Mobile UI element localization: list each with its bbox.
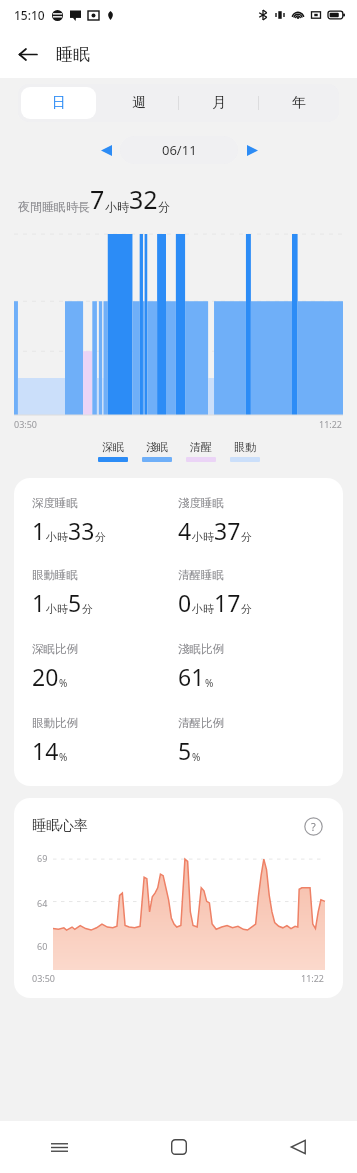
button[interactable]: Help: [301, 814, 325, 838]
staticText: 1: [32, 515, 46, 546]
staticText: 分: [241, 530, 252, 544]
staticText: 60: [37, 940, 48, 952]
button[interactable]: 月: [182, 87, 256, 119]
staticText: 11:22: [319, 418, 343, 430]
staticText: %: [205, 676, 214, 690]
staticText: 淺眠: [146, 440, 168, 454]
button[interactable]: 日: [21, 87, 96, 119]
button[interactable]: 年: [262, 87, 336, 119]
staticText: 分: [158, 199, 170, 214]
staticText: 深眠比例: [32, 642, 78, 656]
staticText: 淺眠比例: [178, 642, 224, 656]
staticText: 深度睡眠: [32, 496, 78, 510]
staticText: 夜間睡眠時長: [18, 199, 90, 214]
staticText: 分: [95, 530, 106, 544]
staticText: 15:10: [14, 7, 45, 23]
staticText: 小時: [192, 602, 214, 616]
staticText: 眼動比例: [32, 716, 78, 730]
staticText: 37: [214, 515, 241, 546]
staticText: 週: [132, 94, 146, 112]
staticText: %: [59, 676, 68, 690]
staticText: 清醒: [190, 440, 212, 454]
button[interactable]: 深眠: [98, 440, 128, 462]
staticText: 日: [52, 94, 66, 112]
staticText: 14: [32, 735, 59, 766]
staticText: 年: [292, 94, 306, 112]
staticText: 33: [68, 515, 95, 546]
staticText: 眼動: [234, 440, 256, 454]
staticText: 7: [90, 182, 105, 216]
button[interactable]: Next day: [238, 136, 266, 164]
button[interactable]: Recents: [0, 1121, 119, 1173]
staticText: 06/11: [162, 141, 197, 159]
staticText: 11:22: [301, 972, 325, 984]
button[interactable]: Back: [238, 1121, 357, 1173]
staticText: 小時: [46, 602, 68, 616]
staticText: 03:50: [32, 972, 56, 984]
staticText: 分: [241, 602, 252, 616]
staticText: %: [59, 750, 68, 764]
staticText: 69: [37, 852, 48, 864]
staticText: 月: [212, 94, 226, 112]
staticText: 睡眠心率: [32, 817, 88, 835]
button[interactable]: Previous day: [92, 136, 120, 164]
button[interactable]: Home: [119, 1121, 238, 1173]
button[interactable]: Back: [10, 37, 44, 71]
staticText: 0: [178, 587, 192, 618]
staticText: 4: [178, 515, 192, 546]
button[interactable]: 淺眠: [142, 440, 172, 462]
staticText: 分: [82, 602, 93, 616]
staticText: 03:50: [14, 418, 38, 430]
staticText: 清醒睡眠: [178, 568, 224, 582]
staticText: 小時: [192, 530, 214, 544]
staticText: 17: [214, 587, 241, 618]
staticText: 5: [178, 735, 192, 766]
staticText: 深眠: [102, 440, 124, 454]
staticText: 32: [129, 182, 158, 216]
staticText: 小時: [46, 530, 68, 544]
staticText: 清醒比例: [178, 716, 224, 730]
staticText: 5: [68, 587, 82, 618]
staticText: 64: [37, 897, 48, 909]
button[interactable]: 眼動: [230, 440, 260, 462]
staticText: 睡眠: [56, 44, 90, 65]
staticText: 眼動睡眠: [32, 568, 78, 582]
button[interactable]: 週: [102, 87, 176, 119]
staticText: %: [192, 750, 201, 764]
button[interactable]: 06/11: [120, 136, 238, 164]
staticText: 61: [178, 661, 205, 692]
staticText: 小時: [105, 199, 129, 214]
staticText: 1: [32, 587, 46, 618]
staticText: 淺度睡眠: [178, 496, 224, 510]
button[interactable]: 清醒: [186, 440, 216, 462]
staticText: 20: [32, 661, 59, 692]
staticText: ?: [311, 819, 316, 834]
